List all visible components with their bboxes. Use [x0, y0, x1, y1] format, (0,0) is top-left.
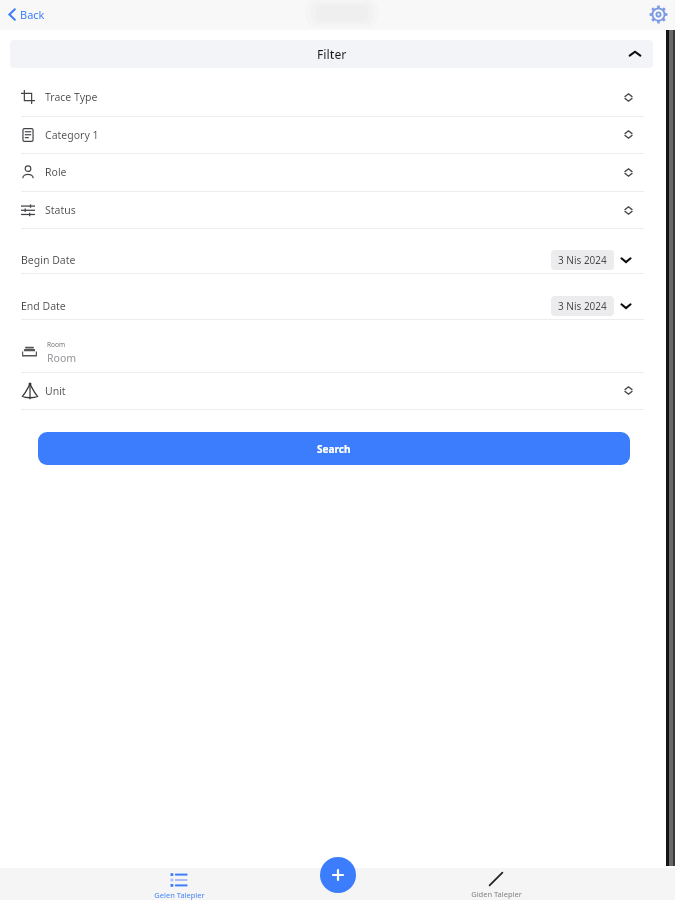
staticText: End Date: [21, 299, 66, 313]
button[interactable]: Begin Date: [0, 247, 675, 273]
button[interactable]: Search: [38, 432, 630, 465]
staticText: Back: [20, 7, 45, 22]
button[interactable]: Gelen Talepler: [129, 871, 229, 900]
button[interactable]: Category 1: [0, 116, 675, 153]
staticText: Room: [47, 351, 77, 365]
staticText: Trace Type: [45, 90, 98, 104]
button[interactable]: Back: [0, 3, 55, 26]
staticText: Status: [45, 203, 76, 217]
staticText: Giden Talepler: [471, 889, 522, 899]
staticText: Search: [317, 442, 351, 456]
staticText: Gelen Talepler: [154, 890, 205, 900]
button[interactable]: Filter: [10, 40, 653, 68]
staticText: Unit: [45, 384, 66, 398]
staticText: Begin Date: [21, 253, 76, 267]
staticText: Category 1: [45, 128, 99, 142]
staticText: Room: [47, 340, 65, 349]
staticText: Role: [45, 165, 67, 179]
button[interactable]: Trace Type: [0, 78, 675, 116]
button[interactable]: Role: [0, 153, 675, 191]
button[interactable]: End Date: [0, 292, 675, 319]
staticText: 3 Nis 2024: [558, 299, 607, 313]
button[interactable]: Settings: [649, 5, 668, 24]
button[interactable]: Unit: [0, 372, 675, 409]
button[interactable]: Giden Talepler: [446, 871, 546, 899]
button[interactable]: Room: [0, 333, 675, 372]
staticText: Filter: [317, 46, 347, 62]
button[interactable]: Status: [0, 191, 675, 229]
button[interactable]: Add: [320, 857, 356, 893]
staticText: 3 Nis 2024: [558, 253, 607, 267]
